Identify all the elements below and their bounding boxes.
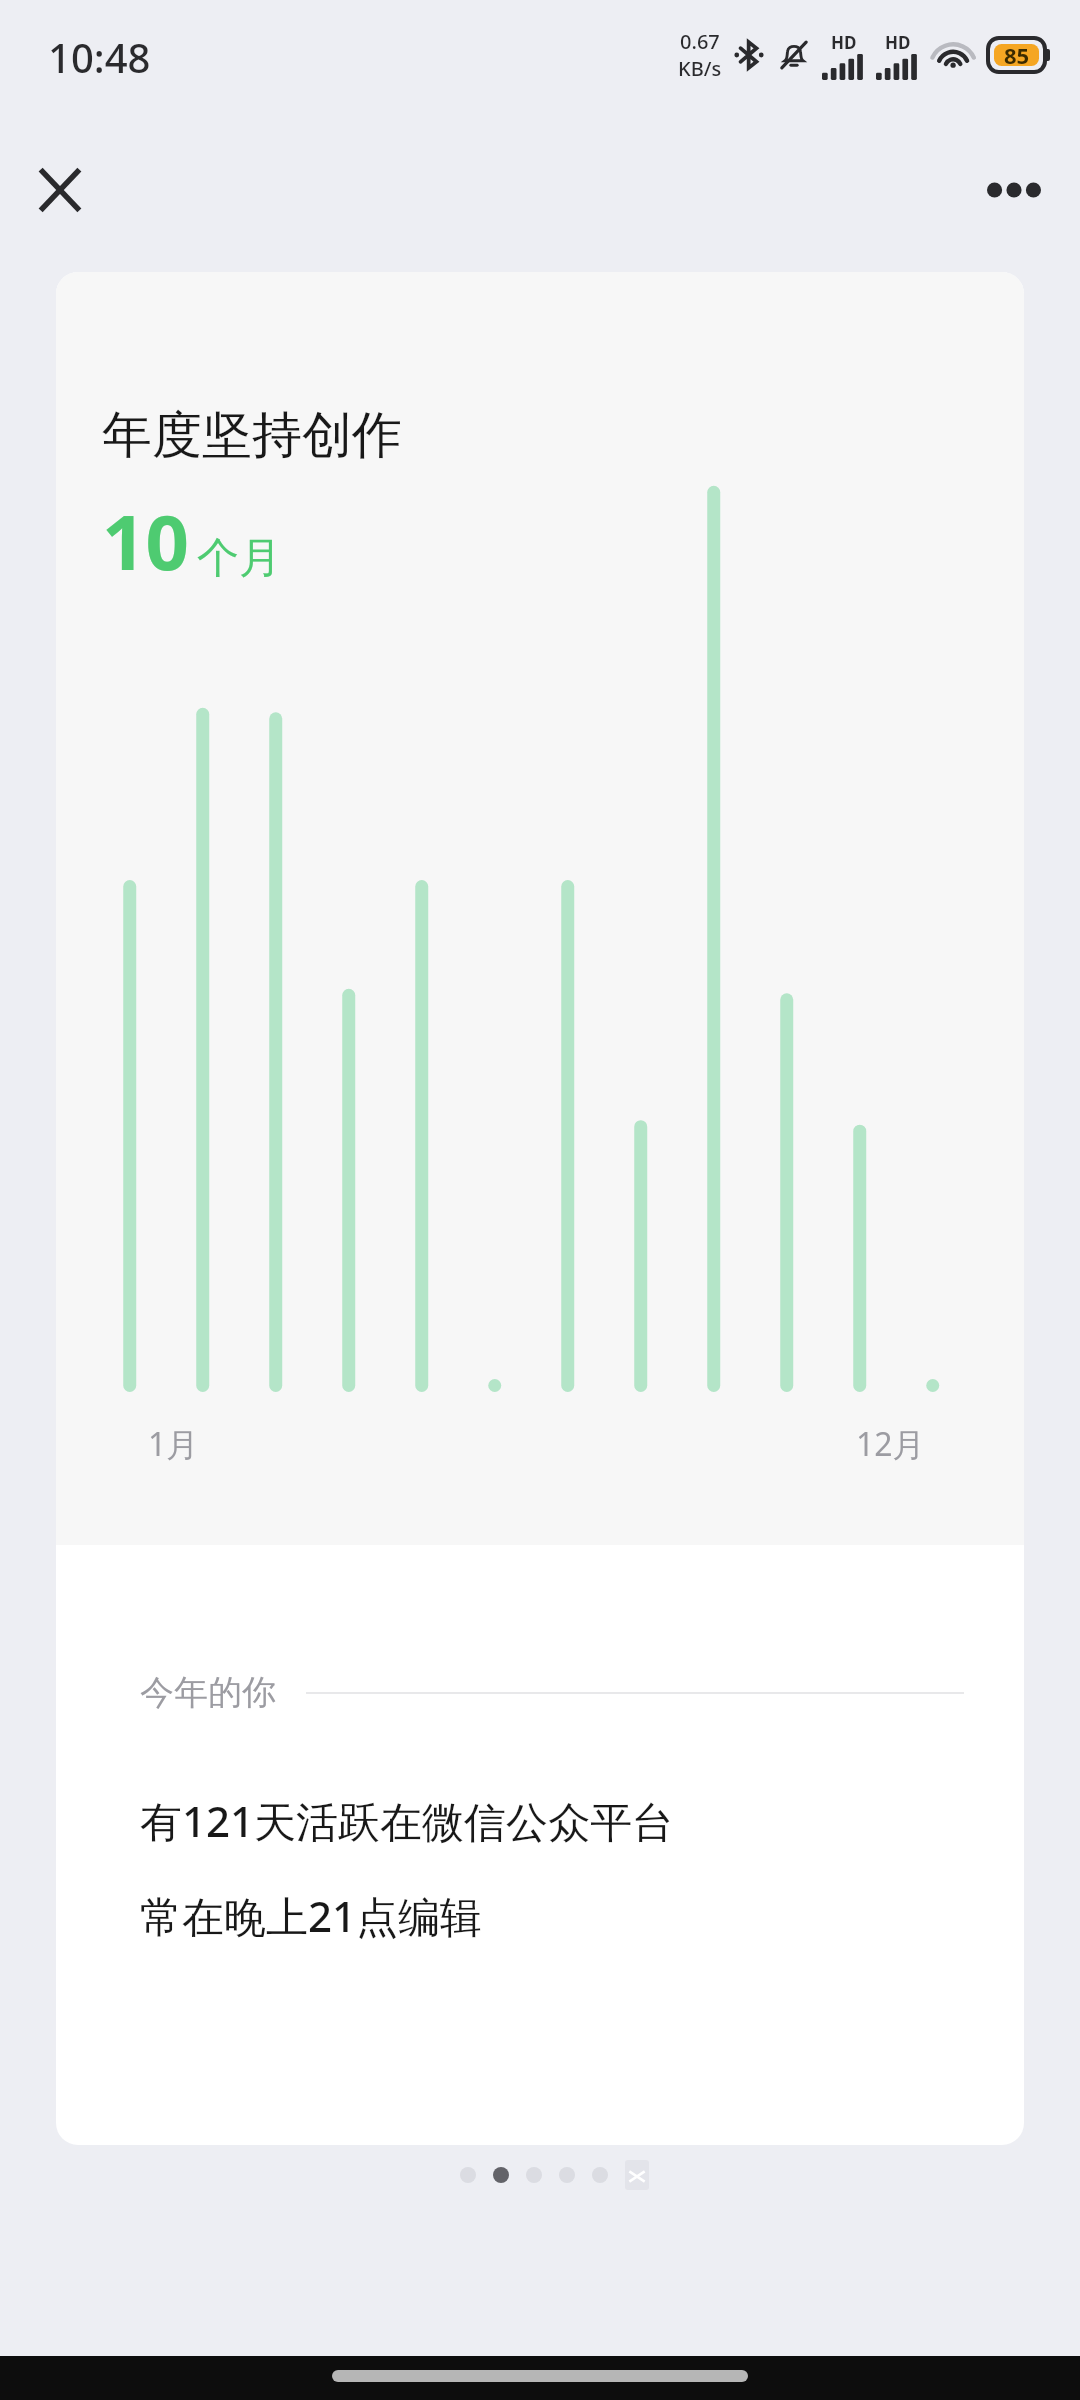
button[interactable]: Page 1 [460, 2167, 476, 2183]
staticText: 个月 [197, 532, 281, 585]
staticText: KB/s [678, 55, 722, 82]
button[interactable]: Page 3 [526, 2167, 542, 2183]
staticText: 10 [102, 489, 189, 593]
staticText: 85 [1004, 40, 1030, 70]
staticText: 10:48 [48, 30, 151, 84]
button[interactable]: Save card [625, 2160, 649, 2190]
staticText: 今年的你 [140, 1671, 276, 1714]
staticText: 有121天活跃在微信公众平台 [140, 1792, 675, 1849]
staticText: 年度坚持创作 [102, 404, 402, 467]
button[interactable]: Page 4 [559, 2167, 575, 2183]
staticText: 12月 [856, 1422, 925, 1466]
staticText: HD [831, 31, 857, 54]
button[interactable]: Close [22, 152, 98, 228]
button[interactable]: Page 2 [493, 2167, 509, 2183]
button[interactable]: 年度坚持创作 [56, 272, 1024, 2145]
button[interactable]: Page 5 [592, 2167, 608, 2183]
button[interactable]: More options [974, 150, 1054, 230]
staticText: 常在晚上21点编辑 [140, 1887, 483, 1944]
staticText: 0.67 [680, 28, 720, 55]
staticText: HD [885, 31, 911, 54]
staticText: 1月 [148, 1422, 199, 1466]
